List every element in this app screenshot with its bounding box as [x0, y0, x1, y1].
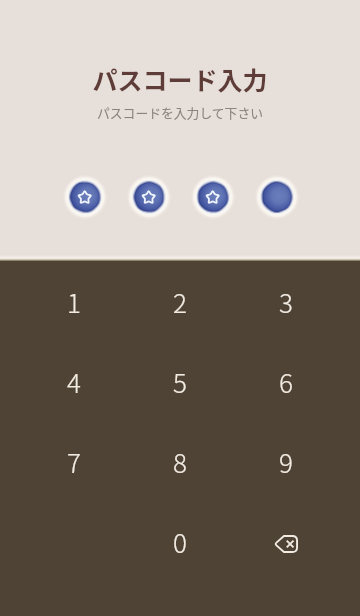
staticText: 0: [173, 523, 187, 561]
staticText: パスコードを入力して下さい: [0, 103, 360, 122]
staticText: 3: [279, 283, 293, 321]
button[interactable]: 1: [21, 262, 127, 342]
button[interactable]: 2: [127, 262, 233, 342]
staticText: パスコード入力: [0, 61, 360, 97]
button[interactable]: 5: [127, 342, 233, 422]
button[interactable]: 7: [21, 422, 127, 502]
button[interactable]: 0: [127, 502, 233, 582]
staticText: 6: [279, 363, 293, 401]
staticText: 9: [279, 443, 293, 481]
button[interactable]: 9: [233, 422, 339, 502]
staticText: 8: [173, 443, 187, 481]
button[interactable]: 3: [233, 262, 339, 342]
button[interactable]: 8: [127, 422, 233, 502]
button[interactable]: Delete: [233, 502, 339, 582]
button[interactable]: 6: [233, 342, 339, 422]
staticText: 1: [67, 283, 81, 321]
staticText: 5: [173, 363, 187, 401]
button[interactable]: 4: [21, 342, 127, 422]
staticText: 4: [67, 363, 81, 401]
staticText: 7: [67, 443, 81, 481]
staticText: 2: [173, 283, 187, 321]
